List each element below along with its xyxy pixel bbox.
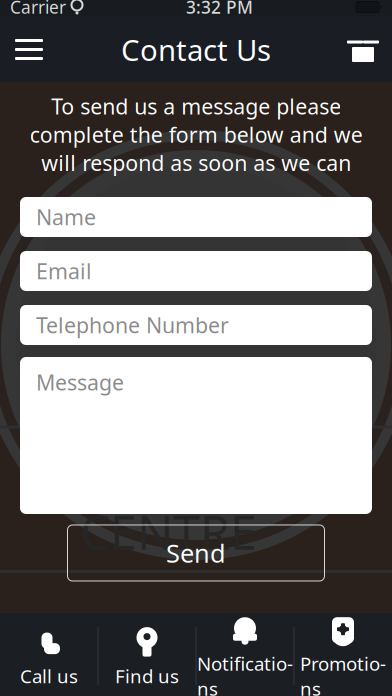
button[interactable]: Message	[20, 357, 372, 514]
staticText: To send us a message please complete the…	[29, 92, 362, 177]
staticText: Message	[36, 368, 124, 396]
staticText: Email	[36, 257, 92, 285]
button[interactable]: Menu	[0, 17, 58, 82]
staticText: Send	[166, 536, 226, 570]
staticText: Telephone Number	[36, 311, 229, 339]
button[interactable]: Name	[20, 197, 372, 237]
button[interactable]: Telephone Number	[20, 305, 372, 345]
button[interactable]: Find us	[98, 613, 195, 696]
button[interactable]: Home	[334, 17, 392, 82]
staticText: THE BODY CENTRE	[80, 435, 312, 563]
button[interactable]: Call us	[0, 613, 97, 696]
staticText: Carrier	[10, 0, 66, 18]
staticText: Find us	[115, 664, 179, 688]
staticText: Name	[36, 203, 96, 231]
staticText: Notifications	[197, 651, 293, 696]
button[interactable]: Notifications	[196, 613, 293, 696]
staticText: Promotions	[300, 651, 386, 696]
staticText: Contact Us	[121, 30, 271, 69]
staticText: Call us	[20, 664, 78, 688]
button[interactable]: Promotions	[294, 613, 391, 696]
button[interactable]: Email	[20, 251, 372, 291]
button[interactable]: Send	[67, 525, 324, 581]
staticText: 3:32 PM	[186, 0, 253, 18]
